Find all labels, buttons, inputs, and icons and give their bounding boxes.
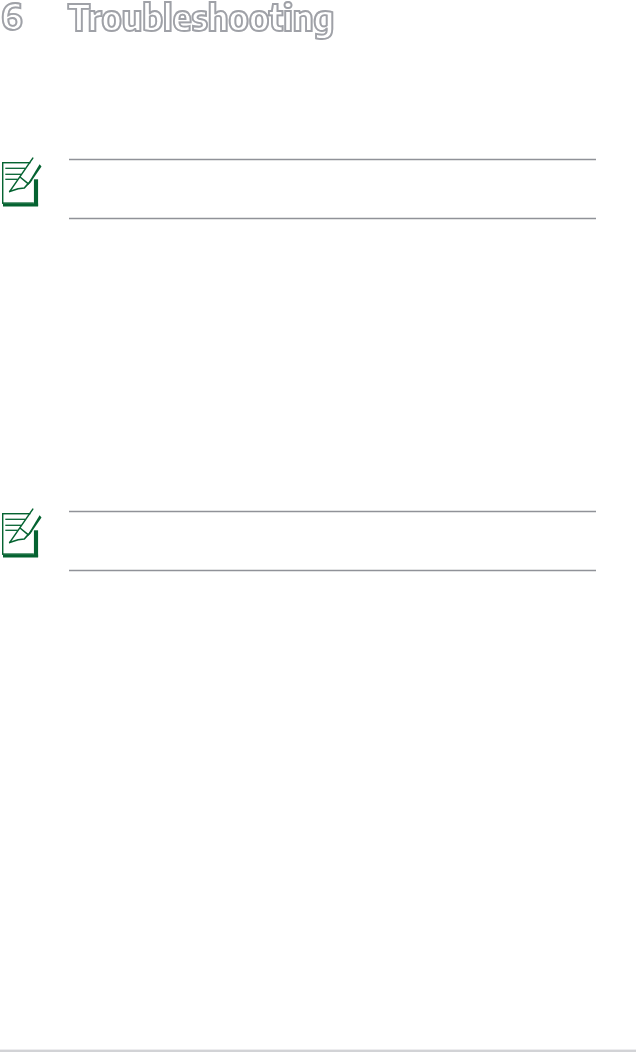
staticText: Troubleshooting [68, 0, 335, 39]
staticText: 6 [1, 0, 23, 38]
button[interactable]: Note [0, 157, 44, 208]
button[interactable]: Note [0, 508, 44, 559]
